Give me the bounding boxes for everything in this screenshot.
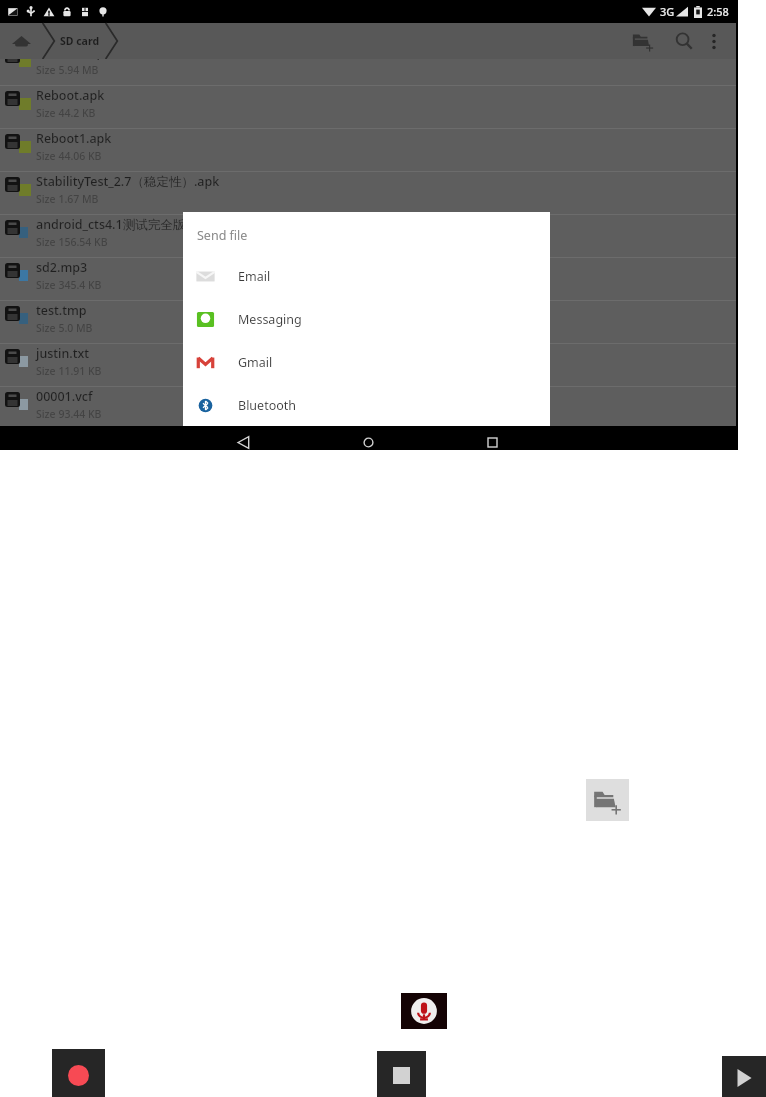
button[interactable]: Home bbox=[0, 23, 42, 59]
button[interactable]: Messaging bbox=[183, 298, 550, 341]
button[interactable]: Reboot.apk bbox=[0, 86, 736, 129]
staticText: Size 1.67 MB bbox=[36, 192, 99, 206]
button[interactable]: sd2.mp3 bbox=[0, 258, 736, 301]
staticText: Size 93.44 KB bbox=[36, 407, 102, 421]
button[interactable]: Email bbox=[183, 255, 550, 298]
button[interactable]: justin.txt bbox=[0, 344, 736, 387]
button[interactable]: Gmail bbox=[183, 341, 550, 384]
staticText: Send file bbox=[197, 227, 248, 244]
staticText: Reboot.apk bbox=[36, 87, 105, 104]
staticText: justin.txt bbox=[36, 345, 90, 362]
staticText: Email bbox=[238, 268, 271, 285]
staticText: 3G bbox=[660, 4, 675, 19]
staticText: Size 44.2 KB bbox=[36, 106, 96, 120]
staticText: Bluetooth bbox=[238, 397, 297, 414]
staticText: 00001.vcf bbox=[36, 388, 93, 405]
button[interactable]: Stop bbox=[377, 1051, 426, 1097]
staticText: Size 5.94 MB bbox=[36, 63, 99, 77]
button[interactable]: Reboot0.apk bbox=[0, 59, 736, 86]
staticText: Size 44.06 KB bbox=[36, 149, 102, 163]
staticText: android_cts4.1测试完全版.apk bbox=[36, 216, 211, 233]
button[interactable]: New folder bbox=[628, 24, 658, 58]
button[interactable]: Play bbox=[722, 1056, 766, 1097]
button[interactable]: StabilityTest_2.7（稳定性）.apk bbox=[0, 172, 736, 215]
button[interactable]: android_cts4.1测试完全版.apk bbox=[0, 215, 736, 258]
button[interactable]: Reboot1.apk bbox=[0, 129, 736, 172]
staticText: Gmail bbox=[238, 354, 273, 371]
staticText: sd2.mp3 bbox=[36, 259, 88, 276]
staticText: Messaging bbox=[238, 311, 302, 328]
button[interactable]: Record bbox=[52, 1049, 105, 1097]
staticText: 2:58 bbox=[707, 4, 729, 19]
button[interactable]: SD card bbox=[55, 28, 105, 54]
staticText: Size 11.91 KB bbox=[36, 364, 102, 378]
staticText: Reboot0.apk bbox=[36, 59, 112, 61]
button[interactable]: New folder bbox=[586, 779, 629, 821]
button[interactable]: More options bbox=[704, 24, 724, 58]
staticText: Size 156.54 KB bbox=[36, 235, 108, 249]
button[interactable]: Bluetooth bbox=[183, 384, 550, 426]
button[interactable]: Home bbox=[350, 430, 386, 454]
button[interactable]: Search bbox=[670, 24, 698, 58]
button[interactable]: Back bbox=[225, 430, 261, 454]
button[interactable]: 00001.vcf bbox=[0, 387, 736, 426]
staticText: Size 345.4 KB bbox=[36, 278, 102, 292]
staticText: Reboot1.apk bbox=[36, 130, 112, 147]
staticText: SD card bbox=[60, 34, 100, 48]
button[interactable]: Recents bbox=[474, 430, 510, 454]
staticText: test.tmp bbox=[36, 302, 87, 319]
staticText: StabilityTest_2.7（稳定性）.apk bbox=[36, 173, 220, 190]
button[interactable]: test.tmp bbox=[0, 301, 736, 344]
button[interactable]: Voice search bbox=[401, 993, 447, 1029]
staticText: Size 5.0 MB bbox=[36, 321, 93, 335]
